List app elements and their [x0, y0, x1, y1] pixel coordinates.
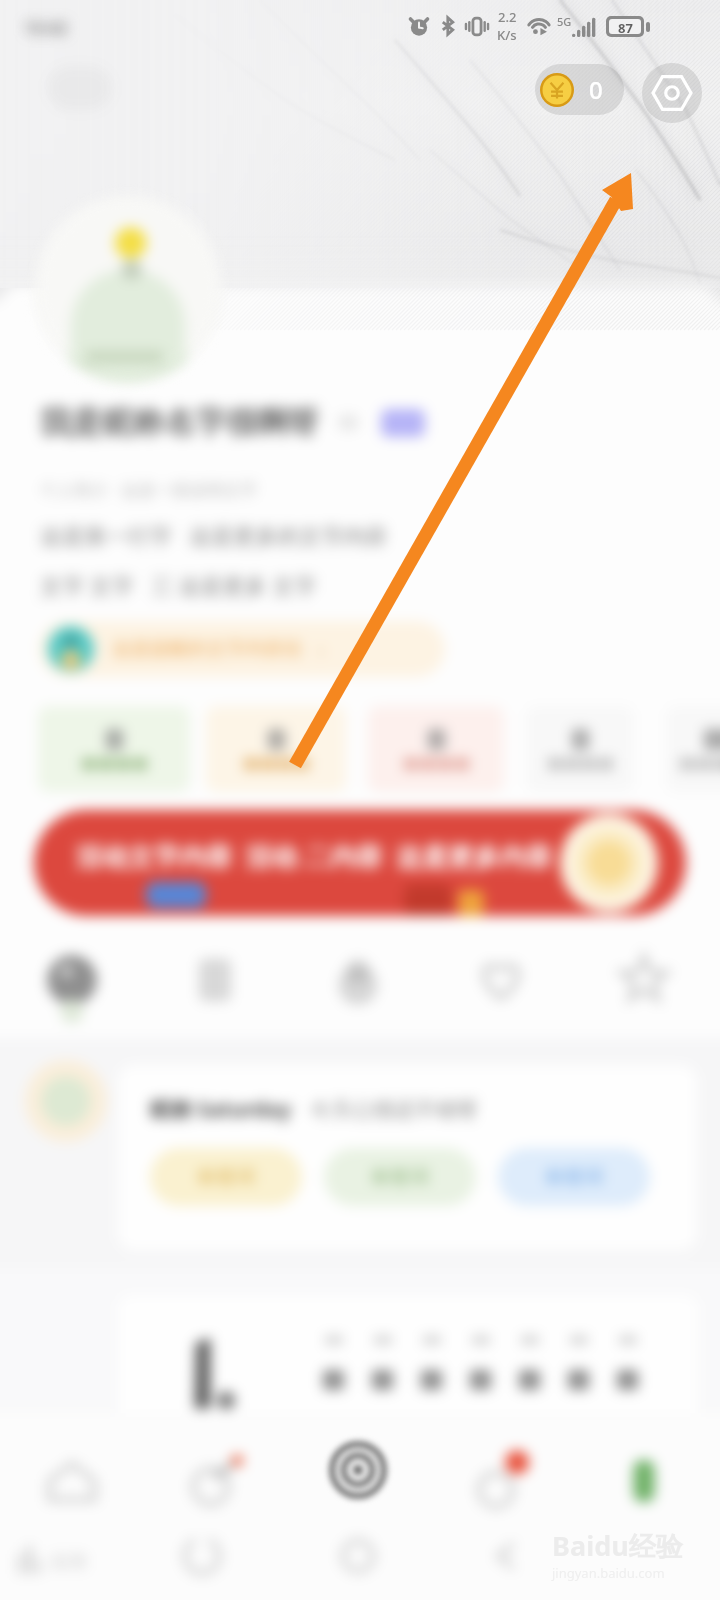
staticText: 昵称 Saturday: [150, 1095, 292, 1124]
staticText: 10:42: [24, 16, 68, 39]
button[interactable]: Action 0: [28, 936, 116, 1024]
button[interactable]: Action 3: [457, 936, 545, 1024]
staticText: K/s: [497, 26, 517, 44]
button[interactable]: Home: [328, 1526, 388, 1586]
staticText: 5G: [557, 14, 572, 29]
button[interactable]: Avatar: [36, 196, 220, 380]
staticText: 我是昵称名字很啊呀: [40, 403, 319, 442]
staticText: 文字 文字 三 这是更多 文字: [40, 570, 317, 600]
staticText: 这是提醒的文字内容信: [112, 637, 302, 661]
button[interactable]: Action 4: [600, 936, 688, 1024]
button[interactable]: Tab 1: [160, 1427, 270, 1535]
button[interactable]: [368, 706, 504, 792]
staticText: Baidu经验: [552, 1527, 683, 1564]
staticText: 这是第一行字 这是更多的文字内容: [40, 520, 388, 550]
button[interactable]: Tab 2: [303, 1427, 413, 1535]
button[interactable]: 标签词: [498, 1148, 650, 1206]
button[interactable]: Settings: [642, 63, 702, 123]
staticText: 标签词: [198, 1165, 255, 1189]
button[interactable]: [666, 706, 720, 792]
button[interactable]: Avatar: [36, 196, 220, 380]
button[interactable]: Tab 4: [589, 1427, 699, 1535]
button[interactable]: Tab 3: [446, 1427, 556, 1535]
button[interactable]: 标签词: [150, 1148, 302, 1206]
staticText: 87: [618, 19, 633, 34]
button[interactable]: Back: [172, 1526, 232, 1586]
button[interactable]: [206, 706, 346, 792]
staticText: 活动文字内容 活动 二内容 这是更多内容: [76, 838, 552, 874]
staticText: 标签词: [372, 1165, 429, 1189]
staticText: 今天心情还不错呀: [310, 1097, 478, 1123]
staticText: 标签词: [546, 1165, 603, 1189]
staticText: jingyan.baidu.com: [552, 1564, 665, 1582]
button[interactable]: [38, 706, 190, 792]
button[interactable]: Tab 0: [17, 1427, 127, 1535]
button[interactable]: Recents: [476, 1526, 536, 1586]
staticText: ID: [339, 410, 359, 435]
button[interactable]: 昵称 Saturday: [118, 1065, 697, 1250]
staticText: 10:42: [24, 16, 68, 39]
button[interactable]: Action 1: [171, 936, 259, 1024]
button[interactable]: 活动文字内容 活动 二内容 这是更多内容: [34, 810, 686, 916]
staticText: 0: [589, 73, 603, 106]
button[interactable]: Action 2: [314, 936, 402, 1024]
button[interactable]: 这是提醒的文字内容信: [39, 621, 445, 677]
staticText: 个人简介 · 这是一段说明文字: [40, 478, 258, 501]
button[interactable]: [526, 706, 634, 792]
button[interactable]: 0: [535, 64, 624, 115]
button[interactable]: 标签词: [324, 1148, 476, 1206]
staticText: 2.2: [498, 8, 517, 26]
